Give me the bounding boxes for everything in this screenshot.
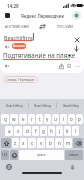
button[interactable]: a — [5, 126, 13, 136]
staticText: u — [54, 116, 57, 122]
staticText: 14:29 — [7, 3, 19, 9]
button[interactable]: Clear text — [72, 35, 81, 44]
button[interactable]: АНГЛИЙСКИЙ — [0, 21, 34, 32]
staticText: d — [26, 128, 29, 134]
button[interactable]: Dictation — [68, 163, 76, 171]
button[interactable]: Menu — [2, 10, 13, 21]
staticText: l — [75, 128, 77, 134]
button[interactable]: v — [37, 138, 45, 148]
button[interactable]: g — [40, 126, 47, 136]
button[interactable]: Swap languages — [37, 21, 48, 32]
button[interactable]: Switch keyboard — [5, 163, 13, 171]
button[interactable]: q — [1, 114, 9, 124]
button[interactable]: t — [36, 114, 43, 124]
button[interactable]: x — [20, 138, 27, 148]
button[interactable]: l — [72, 126, 79, 136]
button[interactable]: s — [14, 126, 22, 136]
staticText: c — [31, 140, 34, 146]
button[interactable]: j — [56, 126, 63, 136]
staticText: o — [70, 116, 73, 122]
button[interactable]: y — [44, 114, 51, 124]
staticText: РУССКИЙ — [57, 24, 73, 29]
staticText: Словарь Переводчик — [6, 78, 35, 82]
button[interactable]: Share — [57, 62, 65, 70]
staticText: Подтягивание на пляже — [3, 51, 76, 59]
button[interactable]: h — [48, 126, 55, 136]
button[interactable]: More options — [73, 62, 81, 70]
staticText: Beachlifting — [63, 104, 79, 108]
button[interactable]: return — [65, 150, 83, 160]
staticText: s — [17, 128, 20, 134]
button[interactable]: Shift — [1, 138, 11, 148]
button[interactable]: 123 — [1, 150, 9, 160]
staticText: j — [59, 128, 61, 134]
staticText: n — [58, 140, 61, 146]
button[interactable]: b — [46, 138, 54, 148]
button[interactable]: p — [76, 114, 83, 124]
button[interactable]: Beachlifting — [57, 99, 84, 112]
staticText: Beachlifting — [4, 34, 35, 41]
button[interactable]: Emoji — [10, 150, 18, 160]
button[interactable]: Backspace — [73, 138, 83, 148]
button[interactable]: f — [32, 126, 39, 136]
staticText: x — [22, 140, 25, 146]
button[interactable]: u — [52, 114, 59, 124]
staticText: m — [66, 140, 71, 146]
button[interactable]: Бесплатный период — [12, 43, 26, 49]
staticText: q — [4, 116, 7, 122]
staticText: f — [35, 128, 37, 134]
staticText: k — [66, 128, 69, 134]
staticText: 123 — [2, 153, 8, 157]
button[interactable]: m — [64, 138, 72, 148]
button[interactable]: o — [68, 114, 75, 124]
button[interactable]: Listen source — [3, 43, 11, 51]
button[interactable]: Download offline — [72, 44, 81, 53]
button[interactable]: Beach lifting weights — [29, 99, 56, 112]
button[interactable]: z — [12, 138, 19, 148]
button[interactable]: Account — [72, 11, 81, 20]
button[interactable]: w — [10, 114, 18, 124]
staticText: r — [31, 116, 33, 122]
staticText: z — [14, 140, 17, 146]
button[interactable]: Словарь Переводчик — [3, 76, 38, 83]
button[interactable]: РУССКИЙ — [46, 21, 84, 32]
staticText: Beach lifting — [6, 104, 23, 108]
button[interactable]: r — [28, 114, 35, 124]
staticText: b — [49, 140, 52, 146]
staticText: a — [8, 128, 11, 134]
button[interactable]: Beach lifting — [0, 99, 28, 112]
button[interactable]: e — [19, 114, 27, 124]
staticText: g — [42, 128, 45, 134]
staticText: space — [37, 153, 46, 157]
button[interactable]: k — [64, 126, 71, 136]
staticText: Бесплатный период — [13, 44, 25, 48]
button[interactable]: c — [28, 138, 36, 148]
button[interactable]: space — [19, 150, 64, 160]
staticText: h — [50, 128, 53, 134]
staticText: Яндекс Переводчик — [21, 13, 64, 19]
button[interactable]: Bookmark — [65, 62, 73, 70]
staticText: y — [46, 116, 49, 122]
staticText: w — [12, 116, 16, 122]
staticText: p — [78, 116, 81, 122]
staticText: АНГЛИЙСКИЙ — [5, 24, 29, 29]
staticText: e — [22, 116, 25, 122]
staticText: return — [69, 153, 79, 157]
staticText: v — [40, 140, 43, 146]
staticText: Beach lifting weights — [29, 104, 56, 108]
staticText: t — [39, 116, 41, 122]
button[interactable]: d — [23, 126, 31, 136]
staticText: i — [63, 116, 65, 122]
button[interactable]: Listen translation — [3, 62, 11, 70]
button[interactable]: i — [60, 114, 67, 124]
button[interactable]: n — [55, 138, 63, 148]
